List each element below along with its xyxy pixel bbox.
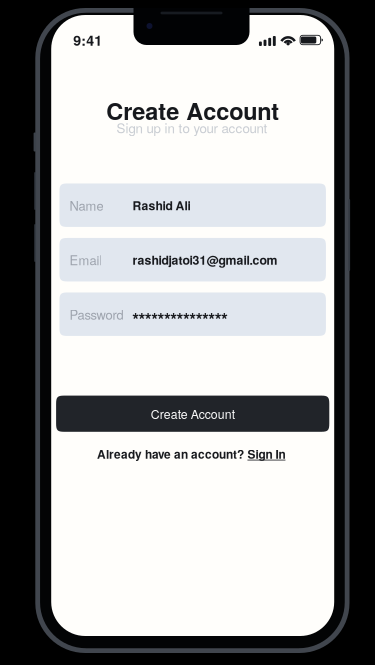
staticText: Create Account [151, 405, 235, 422]
button[interactable]: Create Account [56, 396, 329, 432]
staticText: * [170, 306, 177, 331]
staticText: * [132, 306, 139, 331]
staticText: * [215, 306, 222, 331]
staticText: * [138, 306, 145, 331]
staticText: Already have an account? [97, 445, 244, 462]
staticText: * [208, 306, 215, 331]
button[interactable]: Sign In [247, 445, 285, 462]
staticText: * [196, 306, 203, 331]
staticText: * [189, 306, 196, 331]
staticText: Rashid Ali [132, 196, 190, 214]
staticText: * [183, 306, 190, 331]
staticText: Sign In [247, 445, 285, 462]
staticText: rashidjatoi31@gmail.com [132, 251, 277, 268]
staticText: * [177, 306, 184, 331]
staticText: Name [69, 196, 103, 214]
staticText: * [145, 306, 152, 331]
staticText: * [202, 306, 209, 331]
staticText: Sign up in to your account [117, 118, 268, 137]
staticText: Password [69, 305, 123, 323]
staticText: * [164, 306, 171, 331]
staticText: Create Account [106, 94, 279, 127]
staticText: * [221, 306, 228, 331]
staticText: 9:41 [73, 30, 102, 50]
staticText: * [157, 306, 164, 331]
staticText: Email [69, 250, 102, 269]
staticText: * [151, 306, 158, 331]
